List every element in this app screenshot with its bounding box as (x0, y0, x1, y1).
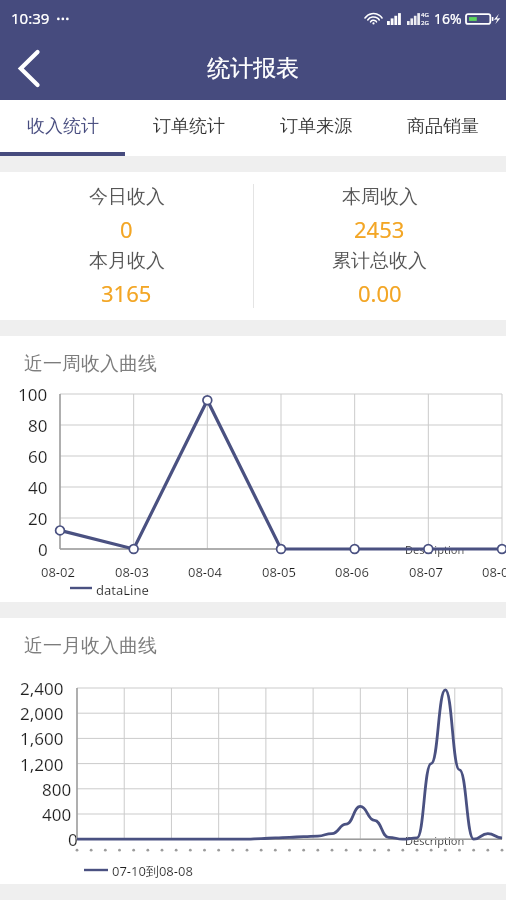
staticText: 40 (28, 476, 48, 499)
staticText: 本周收入 (342, 185, 418, 209)
staticText: 08-08 (482, 563, 506, 581)
staticText: 400 (42, 803, 72, 826)
staticText: 4G (421, 11, 429, 19)
staticText: 1,600 (20, 727, 64, 750)
button[interactable]: 订单统计 (126, 100, 252, 152)
staticText: 08-06 (335, 563, 369, 581)
staticText: 今日收入 (89, 185, 165, 209)
staticText: 800 (42, 778, 72, 801)
staticText: 08-05 (262, 563, 296, 581)
staticText: 商品销量 (407, 115, 479, 138)
staticText: 收入统计 (27, 115, 99, 138)
staticText: 0 (68, 828, 78, 851)
staticText: 08-03 (115, 563, 149, 581)
staticText: Description (405, 542, 465, 557)
staticText: 累计总收入 (332, 249, 427, 273)
staticText: 0.00 (358, 278, 402, 308)
staticText: 3165 (101, 278, 152, 308)
staticText: 100 (18, 383, 48, 406)
staticText: 08-04 (188, 563, 222, 581)
staticText: 16% (434, 9, 462, 28)
staticText: 2,400 (20, 677, 64, 700)
staticText: 1,200 (20, 753, 64, 776)
staticText: 08-07 (409, 563, 443, 581)
staticText: 近一月收入曲线 (24, 634, 157, 658)
staticText: 0 (120, 214, 133, 244)
staticText: 近一周收入曲线 (24, 352, 157, 376)
staticText: dataLine (96, 581, 149, 599)
staticText: 20 (28, 507, 48, 530)
staticText: 2453 (354, 214, 405, 244)
button[interactable]: 订单来源 (252, 100, 379, 152)
staticText: 订单来源 (280, 115, 352, 138)
staticText: 08-02 (41, 563, 75, 581)
staticText: 60 (28, 445, 48, 468)
button[interactable]: Back (0, 39, 58, 97)
staticText: 统计报表 (207, 54, 299, 83)
staticText: 07-10到08-08 (112, 862, 193, 880)
staticText: 2,000 (20, 702, 64, 725)
staticText: Description (405, 833, 465, 848)
button[interactable]: 收入统计 (0, 100, 126, 152)
button[interactable]: 商品销量 (379, 100, 506, 152)
staticText: 80 (28, 414, 48, 437)
staticText: 订单统计 (153, 115, 225, 138)
staticText: 2G (421, 19, 429, 27)
staticText: 0 (38, 538, 48, 561)
staticText: 10:39 (11, 8, 50, 28)
staticText: 本月收入 (89, 249, 165, 273)
